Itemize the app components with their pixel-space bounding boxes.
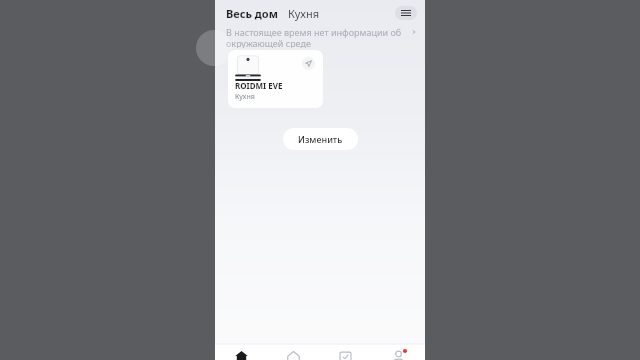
button[interactable]: Navigate <box>302 57 315 70</box>
button[interactable]: Изменить <box>283 128 358 150</box>
button[interactable]: Profile <box>372 344 425 360</box>
button[interactable]: Весь дом <box>225 6 279 21</box>
staticText: ROIDMI EVE <box>235 80 283 91</box>
button[interactable]: В настоящее время нет информации об окру… <box>215 26 425 48</box>
staticText: Изменить <box>298 133 343 145</box>
staticText: Кухня <box>288 6 320 21</box>
other: More <box>411 29 417 35</box>
staticText: В настоящее время нет информации об окру… <box>226 26 409 48</box>
button[interactable]: Navigate <box>228 50 323 108</box>
staticText: Весь дом <box>226 6 278 21</box>
button[interactable]: Rooms <box>267 344 319 360</box>
button[interactable]: Menu <box>395 6 417 20</box>
button[interactable]: Кухня <box>287 6 321 21</box>
button[interactable]: Scenes <box>319 344 372 360</box>
button[interactable]: Home <box>215 344 267 360</box>
staticText: Кухня <box>235 92 255 102</box>
